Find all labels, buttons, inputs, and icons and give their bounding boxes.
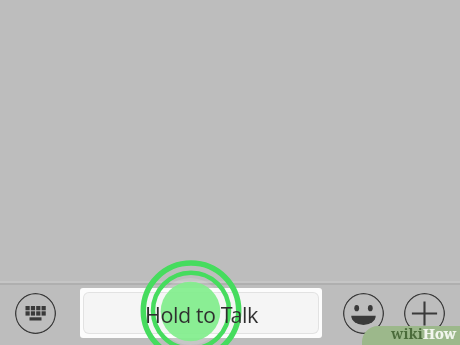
staticText: How [423,323,457,343]
button[interactable]: Keyboard [15,293,56,334]
button[interactable]: Hold to Talk [80,288,322,338]
button[interactable]: Emoji [343,293,384,334]
staticText: wiki [391,323,423,343]
staticText: Hold to Talk [145,300,258,329]
button[interactable]: More [404,293,445,334]
